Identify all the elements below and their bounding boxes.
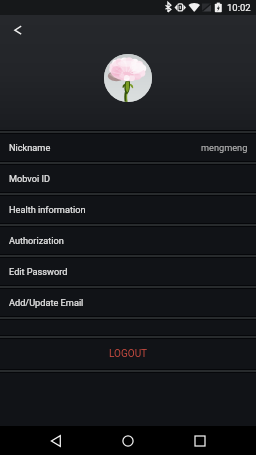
button[interactable]: LOGOUT — [0, 339, 256, 369]
staticText: Health information — [9, 204, 86, 215]
button[interactable]: Mobvoi ID — [0, 165, 256, 192]
staticText: Edit Password — [9, 266, 68, 277]
button[interactable]: Profile photo — [104, 54, 152, 102]
button[interactable]: Back — [36, 426, 76, 455]
button[interactable]: Recent apps — [180, 426, 220, 455]
button[interactable]: Authorization — [0, 227, 256, 254]
staticText: 10:02 — [227, 2, 251, 13]
staticText: mengmeng — [201, 142, 248, 153]
staticText: Nickname — [9, 142, 51, 153]
staticText: LOGOUT — [109, 348, 148, 360]
staticText: Mobvoi ID — [9, 173, 51, 184]
button[interactable]: Add/Update Email — [0, 289, 256, 316]
staticText: Authorization — [9, 235, 64, 246]
button[interactable]: Edit Password — [0, 258, 256, 285]
button[interactable]: Health information — [0, 196, 256, 223]
button[interactable]: Back — [8, 21, 32, 45]
staticText: Add/Update Email — [9, 297, 84, 308]
button[interactable]: Nickname — [0, 134, 256, 161]
button[interactable]: Home — [108, 426, 148, 455]
